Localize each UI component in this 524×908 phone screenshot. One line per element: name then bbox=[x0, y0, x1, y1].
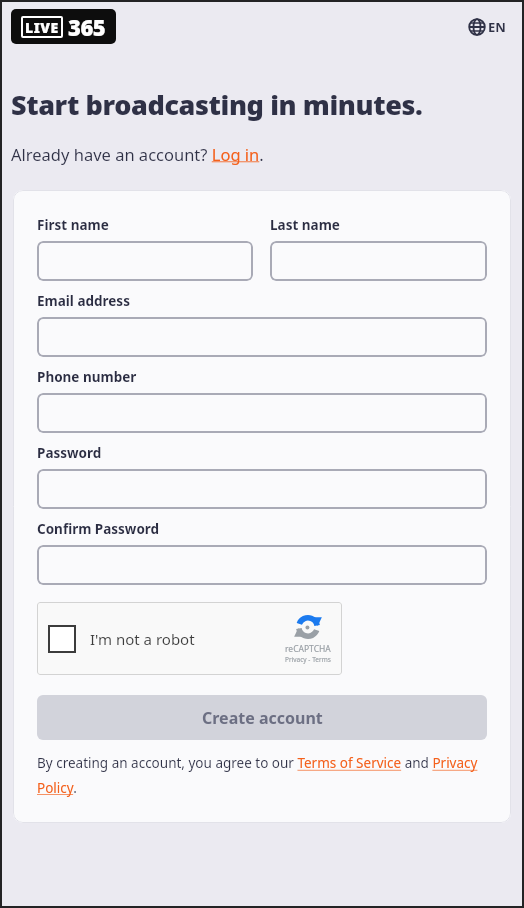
button[interactable]: Change language, English bbox=[464, 14, 510, 40]
staticText: reCAPTCHA bbox=[285, 643, 331, 655]
button[interactable]: Live365 home bbox=[11, 9, 116, 44]
button[interactable]: Create account bbox=[37, 695, 487, 740]
staticText: Privacy - Terms bbox=[285, 655, 331, 664]
button[interactable]: Confirm Password bbox=[37, 545, 487, 585]
staticText: Confirm Password bbox=[37, 520, 160, 538]
staticText: 365 bbox=[68, 12, 106, 42]
staticText: Email address bbox=[37, 292, 130, 310]
other: I'm not a robot checkbox bbox=[48, 625, 76, 653]
button[interactable]: Already have an account? Log in. bbox=[11, 143, 264, 165]
staticText: LIVE bbox=[25, 18, 59, 37]
staticText: Last name bbox=[270, 216, 340, 234]
button[interactable]: Last name bbox=[270, 241, 487, 281]
staticText: Phone number bbox=[37, 368, 137, 386]
staticText: Already have an account? Log in. bbox=[11, 143, 264, 165]
staticText: First name bbox=[37, 216, 109, 234]
button[interactable]: First name bbox=[37, 241, 253, 281]
button[interactable]: Email address bbox=[37, 317, 487, 357]
button[interactable]: Password bbox=[37, 469, 487, 509]
button[interactable]: Phone number bbox=[37, 393, 487, 433]
staticText: Create account bbox=[202, 707, 323, 729]
staticText: EN bbox=[488, 18, 506, 36]
button[interactable]: By creating an account, you agree to our… bbox=[37, 754, 487, 797]
staticText: By creating an account, you agree to our… bbox=[37, 754, 487, 797]
staticText: I'm not a robot bbox=[90, 629, 195, 649]
staticText: Password bbox=[37, 444, 102, 462]
button[interactable]: I'm not a robot checkbox bbox=[37, 602, 342, 675]
staticText: Start broadcasting in minutes. bbox=[11, 86, 423, 123]
